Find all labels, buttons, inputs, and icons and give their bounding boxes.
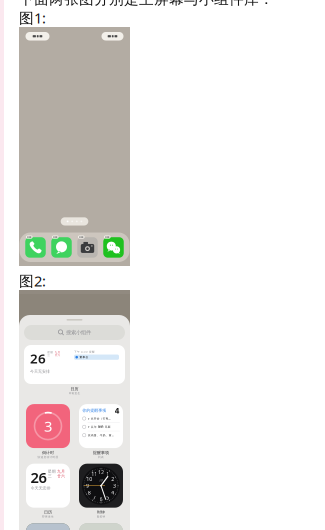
button[interactable]: 搜索小组件 xyxy=(24,325,125,340)
staticText: 5 xyxy=(106,494,109,501)
staticText: 即将发生 xyxy=(42,515,54,518)
staticText: 2 xyxy=(111,475,114,482)
button[interactable]: Messages xyxy=(50,234,72,258)
staticText: 下面两张图分别是主屏幕与小组件库： xyxy=(19,0,274,8)
staticText: 6 xyxy=(99,496,102,503)
staticText: 3 xyxy=(44,416,52,436)
staticText: 九月 xyxy=(55,351,61,354)
staticText: 廿六 xyxy=(57,473,65,478)
staticText: 7 xyxy=(93,494,96,501)
staticText: 时钟 xyxy=(97,510,105,515)
staticText: 三 xyxy=(48,473,52,478)
staticText: 倒计时 xyxy=(42,450,54,455)
staticText: 图1: xyxy=(19,8,46,27)
staticText: 日历 xyxy=(44,510,52,515)
staticText: 九月 xyxy=(57,469,65,474)
staticText: 模拟钟 xyxy=(96,515,105,518)
staticText: 8 点开会（打电… xyxy=(88,417,111,420)
staticText: 三 xyxy=(47,354,50,357)
staticText: 廿六 xyxy=(55,354,61,357)
staticText: 3 xyxy=(113,482,116,489)
staticText: 即将发生 xyxy=(68,392,80,395)
staticText: 搜索小组件 xyxy=(66,329,91,336)
staticText: 提醒事项 xyxy=(93,450,109,455)
staticText: 26 xyxy=(30,468,46,487)
staticText: 买鸡蛋、牛奶、黄… xyxy=(88,433,114,437)
staticText: 9 xyxy=(86,482,89,489)
staticText: 列表 xyxy=(98,455,104,459)
staticText: 8 xyxy=(88,489,91,496)
staticText: 董事会 xyxy=(79,355,88,359)
staticText: 今天无安排 xyxy=(30,369,50,374)
staticText: 26 xyxy=(30,349,46,367)
staticText: 4 xyxy=(111,489,114,496)
staticText: CLK xyxy=(98,478,103,482)
staticText: 11 xyxy=(91,470,97,477)
staticText: 星期 xyxy=(47,351,53,354)
staticText: 10 xyxy=(86,475,92,482)
staticText: 今天无安排 xyxy=(30,486,50,491)
staticText: 日历 xyxy=(70,386,78,391)
staticText: 快速启动计时器 xyxy=(37,455,58,459)
staticText: 你的提醒事项 xyxy=(82,408,106,413)
button[interactable]: Camera xyxy=(76,234,98,258)
staticText: 9 点与 Sarah 见面 xyxy=(88,425,111,429)
staticText: 4 xyxy=(115,405,120,416)
button[interactable]: WeChat xyxy=(102,234,124,258)
button[interactable]: Phone xyxy=(24,234,46,258)
staticText: 星期 xyxy=(48,469,56,474)
staticText: 1 xyxy=(106,470,109,477)
staticText: 下午 4:30 提醒 xyxy=(74,350,95,353)
staticText: 12 xyxy=(98,468,104,476)
staticText: 图2: xyxy=(19,271,46,290)
